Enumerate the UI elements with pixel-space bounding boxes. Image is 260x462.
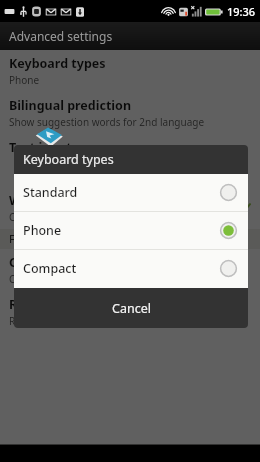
staticText: Show suggestion words for 2nd language	[9, 115, 205, 129]
staticText: Reset screen to factory default	[9, 314, 152, 328]
staticText: Finger touch calibration	[9, 232, 129, 246]
button[interactable]: Keyboard types	[0, 50, 260, 92]
staticText: Cancel	[112, 300, 151, 317]
button[interactable]: Phone	[14, 212, 248, 249]
button[interactable]: Cancel	[14, 288, 248, 328]
button[interactable]: Calibration tool	[0, 249, 260, 291]
button[interactable]: Bilingual prediction	[0, 92, 260, 134]
button[interactable]: Text input	[0, 134, 260, 161]
staticText: Word completion	[9, 192, 116, 209]
staticText: Compact	[23, 260, 220, 277]
staticText: Keyboard types	[23, 151, 114, 168]
button[interactable]: Reset calibration	[0, 291, 260, 333]
staticText: 19:36	[227, 4, 256, 19]
button[interactable]: Standard	[14, 174, 248, 211]
staticText: Phone	[23, 222, 220, 239]
staticText: Standard	[23, 184, 220, 201]
button[interactable]: Word completion	[0, 187, 260, 229]
staticText: Calibrate your screen for a better touch…	[9, 272, 248, 286]
staticText: Reset calibration	[9, 296, 115, 313]
staticText: Keyboard types	[9, 55, 106, 72]
staticText: Text input	[9, 139, 72, 156]
staticText: Phone	[9, 73, 40, 87]
staticText: Advanced settings	[9, 28, 113, 44]
staticText: Calibration tool	[9, 254, 106, 271]
staticText: Bilingual prediction	[9, 97, 132, 114]
button[interactable]: Compact	[14, 250, 248, 287]
staticText: Complete an unfinished word when typing	[9, 210, 209, 224]
